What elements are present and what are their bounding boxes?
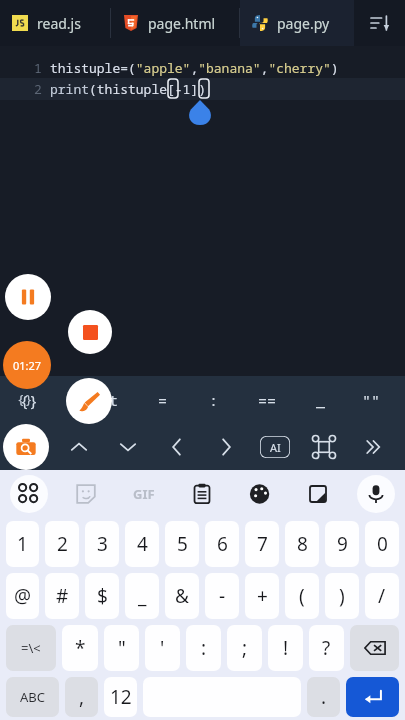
button[interactable]: Tools (3, 424, 49, 470)
staticText: 3 (97, 531, 108, 557)
button[interactable]: 2 (45, 521, 79, 567)
staticText: " (118, 635, 126, 661)
button[interactable]: Sticker (57, 470, 115, 518)
staticText: thistuple=("apple","banana","cherry") (50, 59, 339, 77)
button[interactable]: ( (285, 573, 319, 619)
button[interactable]: Command (299, 423, 348, 470)
button[interactable]: ABC (6, 677, 59, 717)
button[interactable]: GIF (115, 470, 173, 518)
staticText: & (175, 583, 189, 609)
button[interactable]: * (62, 625, 98, 671)
staticText: "" (362, 390, 381, 410)
button[interactable]: 1 (6, 521, 39, 567)
staticText: read.js (37, 14, 81, 33)
button[interactable]: ? (309, 625, 344, 671)
button[interactable]: Clipboard (173, 470, 231, 518)
button[interactable]: read.js (0, 0, 110, 46)
button[interactable]: & (165, 573, 199, 619)
staticText: 7 (257, 531, 268, 557)
button[interactable]: ) (325, 573, 359, 619)
button[interactable]: 5 (165, 521, 199, 567)
button[interactable]: Sort (354, 0, 405, 46)
button[interactable]: _ (125, 573, 159, 619)
button[interactable]: 8 (285, 521, 319, 567)
button[interactable]: . (307, 677, 340, 717)
staticText: , (79, 684, 85, 710)
staticText: 1 (17, 531, 28, 557)
button[interactable]: " (104, 625, 139, 671)
button[interactable]: More (348, 423, 397, 470)
button[interactable]: 4 (125, 521, 159, 567)
button[interactable]: Resize (289, 470, 347, 518)
staticText: : (209, 390, 219, 410)
button[interactable]: Backspace (350, 625, 399, 671)
button[interactable]: - (205, 573, 239, 619)
staticText: $ (97, 583, 108, 609)
button[interactable]: Pause (5, 274, 51, 320)
staticText: 8 (297, 531, 308, 557)
staticText: . (321, 684, 327, 710)
staticText: 01:27 (13, 358, 42, 373)
button[interactable]: Brush (66, 378, 112, 424)
staticText: # (56, 583, 69, 609)
button[interactable]: =\< (6, 625, 56, 671)
button[interactable]: / (365, 573, 399, 619)
staticText: == (258, 390, 277, 410)
button[interactable]: Enter (346, 677, 399, 717)
button[interactable]: = (137, 376, 188, 423)
button[interactable]: Up (54, 423, 103, 470)
button[interactable]: Down (103, 423, 152, 470)
staticText: = (158, 390, 168, 410)
button[interactable]: print (54, 376, 137, 423)
staticText: ; (242, 635, 248, 661)
button[interactable]: == (239, 376, 295, 423)
button[interactable]: Voice input (347, 470, 405, 518)
button[interactable]: ; (227, 625, 262, 671)
staticText: + (257, 583, 268, 609)
staticText: page.py (277, 14, 330, 33)
staticText: * (75, 635, 86, 661)
button[interactable]: : (188, 376, 239, 423)
button[interactable]: Apps (0, 470, 57, 518)
button[interactable]: Left (152, 423, 201, 470)
staticText: / (378, 583, 386, 609)
button[interactable]: Themes (231, 470, 289, 518)
button[interactable]: + (245, 573, 279, 619)
staticText: - (219, 583, 226, 609)
button[interactable]: Stop (68, 310, 112, 354)
button[interactable]: "" (346, 376, 397, 423)
button[interactable]: Timer 01:27 (3, 341, 51, 389)
staticText: ABC (20, 688, 45, 706)
button[interactable]: 12 (104, 677, 137, 717)
staticText: 1 (34, 59, 42, 77)
staticText: 0 (377, 531, 388, 557)
button[interactable]: AI (250, 423, 299, 470)
staticText: page.html (148, 14, 216, 33)
staticText: 12 (110, 684, 132, 710)
button[interactable]: {} (4, 376, 54, 423)
button[interactable]: Right (201, 423, 250, 470)
button[interactable]: : (186, 625, 221, 671)
button[interactable]: # (45, 573, 79, 619)
button[interactable]: , (65, 677, 98, 717)
button[interactable]: _ (295, 376, 346, 423)
button[interactable]: page.html (111, 0, 239, 46)
button[interactable]: ! (268, 625, 303, 671)
button[interactable]: 3 (85, 521, 119, 567)
button[interactable]: 7 (245, 521, 279, 567)
button[interactable]: page.py (240, 0, 354, 46)
staticText: @ (14, 583, 32, 609)
staticText: _ (138, 583, 147, 609)
button[interactable]: 6 (205, 521, 239, 567)
button[interactable]: 0 (365, 521, 399, 567)
staticText: 5 (177, 531, 188, 557)
button[interactable]: @ (6, 573, 39, 619)
staticText: 9 (337, 531, 348, 557)
staticText: ) (339, 583, 345, 609)
button[interactable]: 9 (325, 521, 359, 567)
staticText: GIF (133, 485, 155, 503)
button[interactable]: $ (85, 573, 119, 619)
staticText: print(thistuple[-1]) (50, 80, 207, 98)
button[interactable]: ' (145, 625, 180, 671)
